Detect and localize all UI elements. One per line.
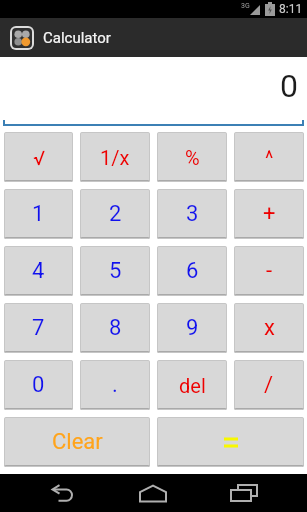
button[interactable]: x bbox=[234, 303, 304, 353]
button[interactable]: 6 bbox=[157, 246, 227, 296]
button[interactable]: 5 bbox=[80, 246, 150, 296]
button[interactable]: 4 bbox=[4, 246, 73, 296]
staticText: 3G bbox=[241, 2, 250, 10]
button[interactable]: ^ bbox=[234, 132, 304, 182]
staticText: ^ bbox=[265, 146, 274, 169]
button[interactable]: √ bbox=[4, 132, 73, 182]
button[interactable]: del bbox=[157, 360, 227, 410]
staticText: 0 bbox=[280, 67, 298, 105]
button[interactable] bbox=[139, 484, 167, 503]
staticText: - bbox=[266, 258, 273, 284]
button[interactable]: 8 bbox=[80, 303, 150, 353]
staticText: 1 bbox=[32, 201, 45, 227]
staticText: Calculator bbox=[43, 29, 111, 47]
staticText: del bbox=[179, 374, 206, 397]
staticText: 2 bbox=[109, 201, 122, 227]
staticText: Clear bbox=[52, 429, 103, 455]
staticText: / bbox=[264, 372, 274, 398]
staticText: 3 bbox=[186, 201, 199, 227]
staticText: x bbox=[264, 315, 275, 341]
button[interactable] bbox=[230, 484, 258, 503]
button[interactable]: Clear bbox=[4, 417, 150, 467]
button[interactable]: 1 bbox=[4, 189, 73, 239]
staticText: 6 bbox=[186, 258, 199, 284]
staticText: 4 bbox=[32, 258, 45, 284]
button[interactable]: 1/x bbox=[80, 132, 150, 182]
staticText: 1/x bbox=[100, 146, 130, 169]
button[interactable]: / bbox=[234, 360, 304, 410]
staticText: √ bbox=[33, 146, 45, 169]
button[interactable]: - bbox=[234, 246, 304, 296]
button[interactable]: . bbox=[80, 360, 150, 410]
staticText: 8:11 bbox=[279, 2, 303, 16]
staticText: 8 bbox=[109, 315, 122, 341]
button[interactable]: 0 bbox=[4, 360, 73, 410]
button[interactable]: 3 bbox=[157, 189, 227, 239]
button[interactable]: + bbox=[234, 189, 304, 239]
button[interactable]: % bbox=[157, 132, 227, 182]
button[interactable]: 9 bbox=[157, 303, 227, 353]
button[interactable]: 2 bbox=[80, 189, 150, 239]
staticText: . bbox=[112, 372, 118, 398]
staticText: 7 bbox=[32, 315, 45, 341]
staticText: 9 bbox=[186, 315, 199, 341]
staticText: + bbox=[263, 201, 276, 227]
button[interactable] bbox=[50, 484, 76, 503]
staticText: % bbox=[185, 146, 200, 169]
staticText: 5 bbox=[109, 258, 122, 284]
staticText: 0 bbox=[32, 372, 45, 398]
button[interactable]: 7 bbox=[4, 303, 73, 353]
button[interactable] bbox=[157, 417, 304, 467]
